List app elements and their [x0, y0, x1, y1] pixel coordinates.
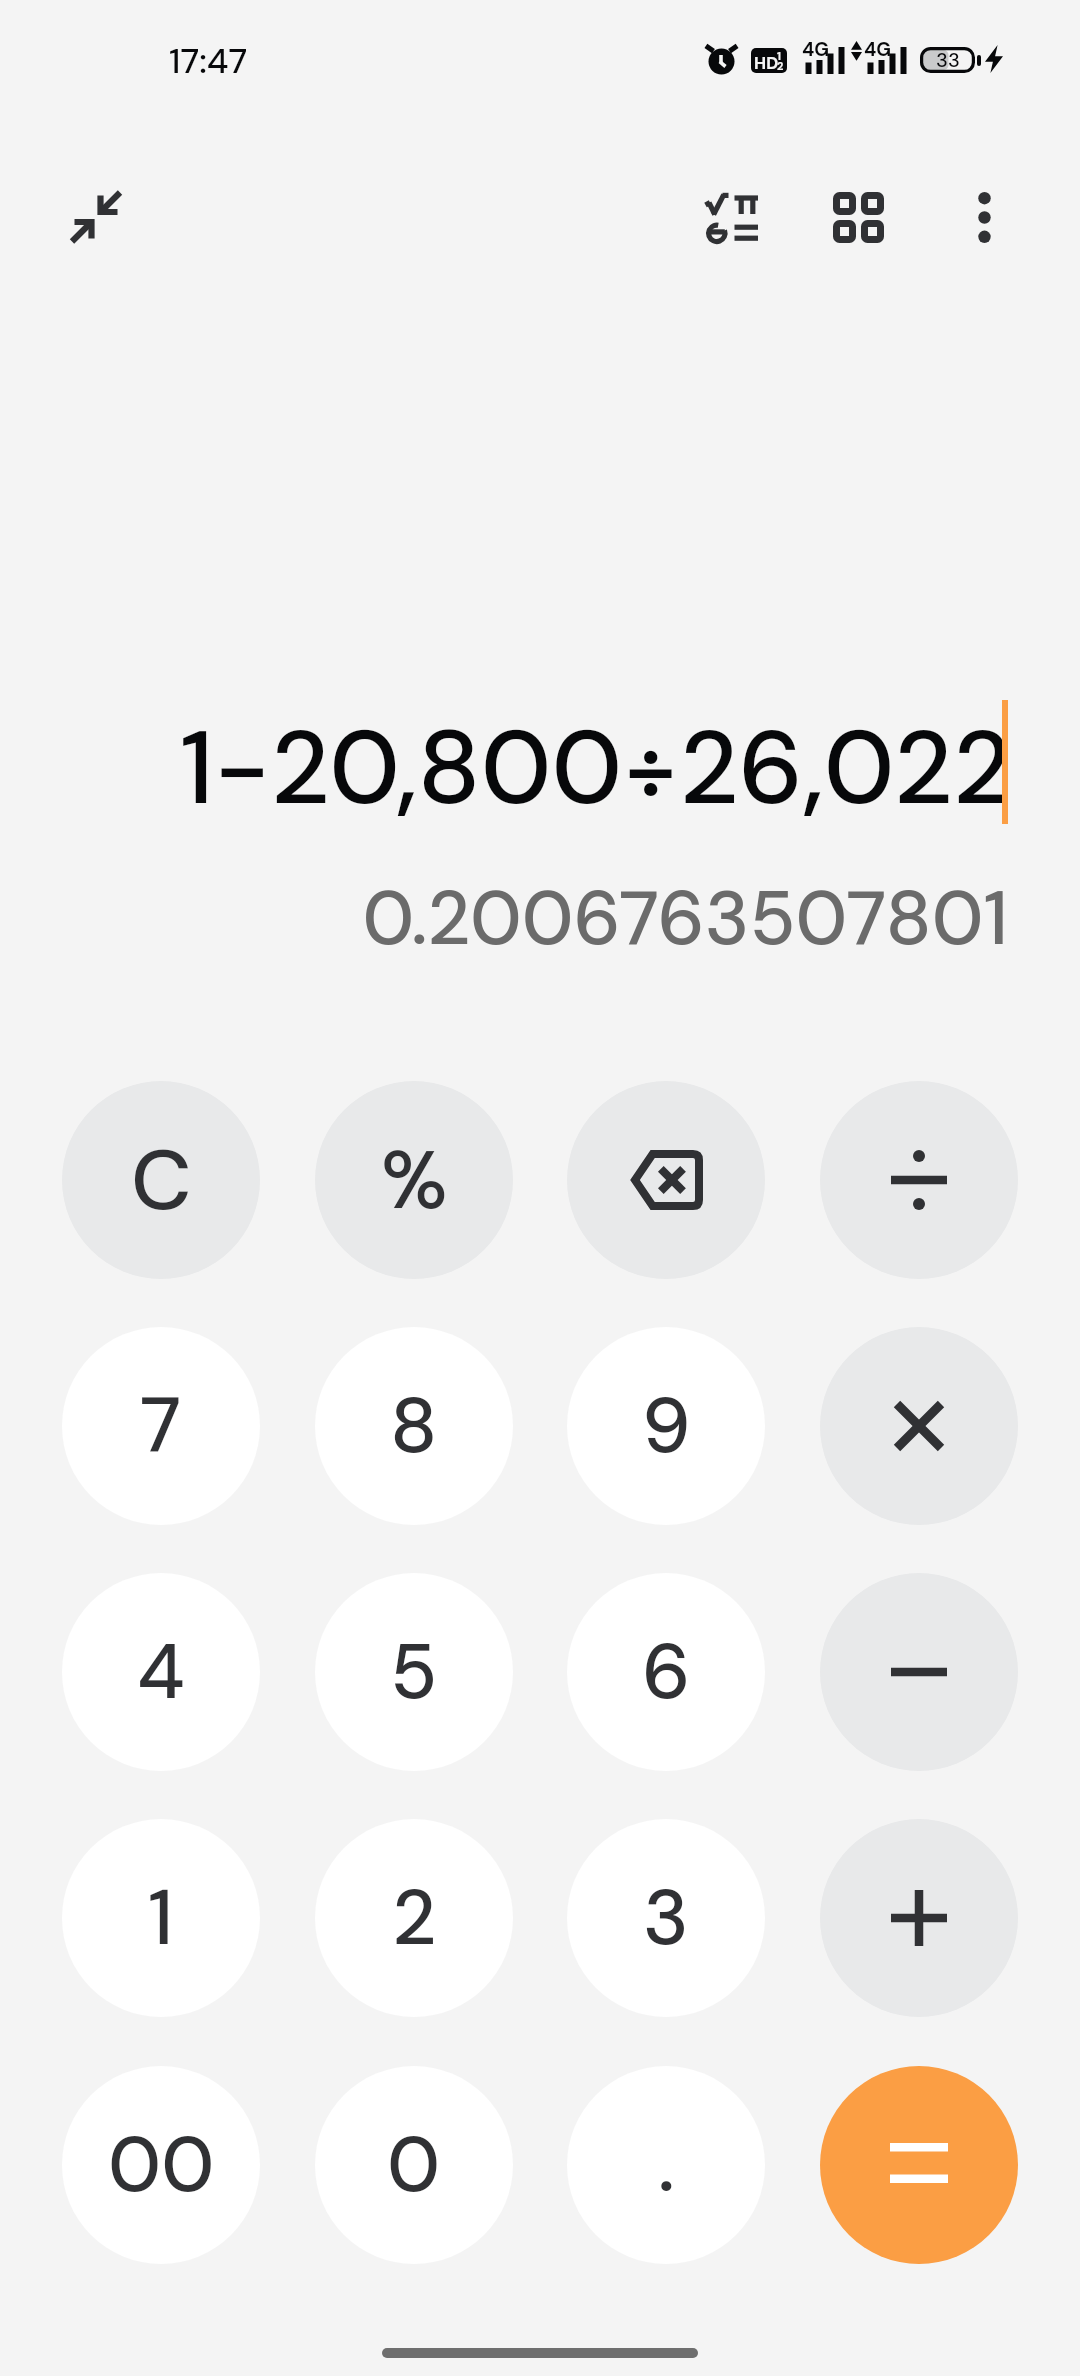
staticText: 4	[137, 1622, 185, 1722]
button[interactable]: Minus	[820, 1573, 1018, 1771]
staticText: 33	[936, 47, 960, 73]
button[interactable]: 8	[315, 1327, 513, 1525]
staticText: 00	[108, 2115, 215, 2215]
staticText: 2	[777, 59, 784, 73]
button[interactable]: 4	[62, 1573, 260, 1771]
button[interactable]: Clear	[62, 1081, 260, 1279]
button[interactable]: 3	[567, 1819, 765, 2017]
button[interactable]: 0	[315, 2066, 513, 2264]
staticText: 1	[148, 1868, 174, 1968]
staticText: 2	[392, 1868, 437, 1968]
button[interactable]: Scientific calculator	[662, 148, 802, 288]
button[interactable]: Collapse	[26, 147, 166, 287]
staticText: 4G	[864, 37, 892, 62]
staticText: 8	[390, 1376, 438, 1476]
staticText: 0.2006763507801	[362, 870, 1008, 968]
button[interactable]: 6	[567, 1573, 765, 1771]
button[interactable]: 00	[62, 2066, 260, 2264]
staticText: C	[131, 1126, 192, 1235]
staticText: 0	[387, 2115, 441, 2215]
button[interactable]: Divide	[820, 1081, 1018, 1279]
button[interactable]: Decimal point	[567, 2066, 765, 2264]
button[interactable]: Converters	[788, 147, 928, 287]
staticText: 3	[643, 1868, 689, 1968]
staticText: 17:47	[169, 38, 248, 84]
staticText: 6	[642, 1622, 691, 1722]
button[interactable]: Percent	[315, 1081, 513, 1279]
button[interactable]: More options	[914, 147, 1054, 287]
button[interactable]: 1	[62, 1819, 260, 2017]
staticText: 5	[390, 1622, 438, 1722]
button[interactable]: Multiply	[820, 1327, 1018, 1525]
button[interactable]: Equals	[820, 2066, 1018, 2264]
button[interactable]: 9	[567, 1327, 765, 1525]
staticText: 1	[777, 49, 782, 63]
staticText: 7	[140, 1376, 182, 1476]
staticText: .	[658, 2115, 675, 2215]
staticText: %	[381, 1128, 448, 1233]
button[interactable]: 5	[315, 1573, 513, 1771]
button[interactable]: Backspace	[567, 1081, 765, 1279]
button[interactable]: 7	[62, 1327, 260, 1525]
staticText: 1−20,800÷26,022	[179, 701, 1012, 834]
button[interactable]: 2	[315, 1819, 513, 2017]
staticText: HD	[754, 52, 779, 73]
staticText: 9	[642, 1376, 691, 1476]
staticText: 4G	[802, 37, 830, 62]
button[interactable]: Plus	[820, 1819, 1018, 2017]
